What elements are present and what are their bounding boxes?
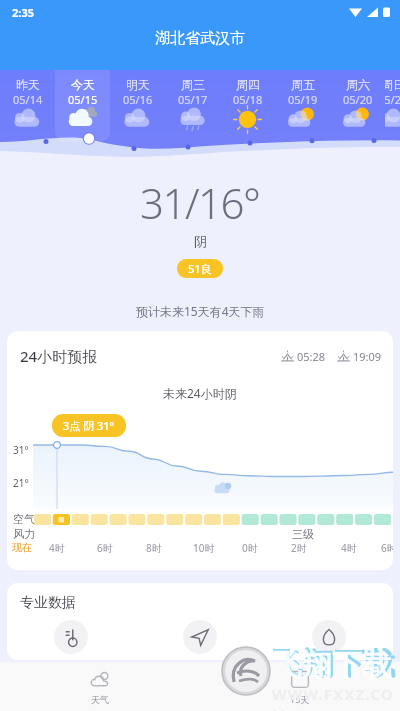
button[interactable]: 周日	[385, 70, 400, 142]
staticText: 05:28	[297, 349, 326, 364]
staticText: 51良	[188, 261, 212, 276]
button[interactable]: 今天	[55, 70, 110, 142]
staticText: 飞翔下载	[272, 647, 392, 684]
button[interactable]: 天气	[0, 662, 200, 711]
staticText: 31/16°	[140, 174, 260, 231]
staticText: 2:35	[12, 5, 34, 20]
button[interactable]: 51良	[177, 259, 223, 278]
staticText: 8时	[146, 541, 162, 555]
button[interactable]: Temperature	[7, 617, 135, 657]
button[interactable]: 3点 阴 31°	[52, 414, 126, 437]
staticText: 现在	[12, 541, 32, 554]
staticText: 空气	[13, 512, 35, 526]
staticText: 6时	[381, 541, 393, 555]
button[interactable]: 周五	[275, 70, 330, 142]
staticText: 4时	[49, 541, 65, 555]
staticText: 天气	[91, 694, 109, 705]
staticText: 05/20	[343, 92, 373, 107]
staticText: 三级	[292, 527, 314, 541]
staticText: 05/15	[68, 92, 98, 107]
staticText: 未来24小时阴	[163, 385, 237, 401]
button[interactable]: 昨天	[0, 70, 55, 142]
staticText: 今天	[71, 77, 95, 92]
staticText: 10时	[193, 541, 215, 555]
button[interactable]: 明天	[110, 70, 165, 142]
staticText: 31°	[13, 443, 29, 457]
button[interactable]: Humidity	[264, 617, 393, 657]
staticText: 05/16	[123, 92, 153, 107]
staticText: 周日	[385, 77, 400, 92]
staticText: 周六	[346, 77, 370, 92]
staticText: 阴	[194, 233, 207, 249]
button[interactable]: Wind	[135, 617, 264, 657]
staticText: 风力	[13, 527, 35, 541]
staticText: 预计未来15天有4天下雨	[136, 303, 265, 319]
button[interactable]: 周三	[165, 70, 220, 142]
staticText: 2时	[291, 541, 307, 555]
staticText: 05/21	[385, 92, 400, 107]
staticText: 湖北省武汉市	[155, 29, 245, 48]
staticText: 昨天	[16, 77, 40, 92]
staticText: 05/19	[288, 92, 318, 107]
staticText: 0时	[242, 541, 258, 555]
staticText: 明天	[126, 77, 150, 92]
staticText: 19:09	[353, 349, 382, 364]
staticText: 24小时预报	[20, 346, 98, 366]
staticText: 4时	[341, 541, 357, 555]
button[interactable]: 15天	[200, 662, 400, 711]
button[interactable]: 周日	[385, 70, 400, 142]
staticText: 05/14	[13, 92, 43, 107]
staticText: 飞翔下载	[272, 645, 396, 683]
staticText: 专业数据	[20, 594, 76, 612]
staticText: 周五	[291, 77, 315, 92]
button[interactable]: 周四	[220, 70, 275, 142]
staticText: 15天	[290, 693, 310, 705]
staticText: 周四	[236, 77, 260, 92]
staticText: 3点 阴 31°	[63, 418, 115, 433]
staticText: 周三	[181, 77, 205, 92]
staticText: 21°	[13, 476, 29, 490]
staticText: 6时	[97, 541, 113, 555]
staticText: 05/17	[178, 92, 208, 107]
button[interactable]: 周六	[330, 70, 385, 142]
staticText: WWW.FXXZ.COM	[272, 684, 400, 711]
staticText: 05/18	[233, 92, 263, 107]
